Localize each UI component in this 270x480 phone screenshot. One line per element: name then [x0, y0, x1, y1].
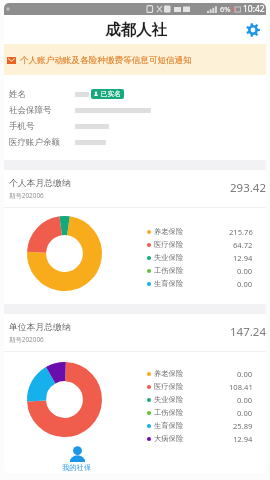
staticText: 0.00	[237, 369, 253, 379]
staticText: 10:42	[243, 3, 265, 15]
button[interactable]: 设置	[242, 19, 264, 41]
staticText: 64.72	[233, 240, 253, 250]
staticText: 工伤保险	[154, 266, 184, 275]
staticText: 医疗保险	[154, 240, 184, 249]
button[interactable]: 手机号	[4, 118, 266, 134]
staticText: 养老保险	[154, 227, 184, 236]
staticText: 6%	[220, 4, 231, 14]
staticText: 0.00	[237, 395, 253, 405]
staticText: 已实名	[101, 90, 121, 98]
button[interactable]: 医疗账户余额	[4, 134, 266, 150]
staticText: 单位本月总缴纳	[9, 322, 71, 333]
button[interactable]: 我的社保	[50, 445, 104, 472]
staticText: 个人本月总缴纳	[9, 178, 71, 189]
button[interactable]: 姓名	[4, 86, 266, 102]
staticText: 期号202006	[9, 335, 44, 344]
staticText: 生育保险	[154, 279, 184, 288]
staticText: 养老保险	[154, 369, 184, 378]
button[interactable]: 个人账户动账及各险种缴费等信息可短信通知	[4, 44, 266, 75]
staticText: 成都人社	[105, 20, 167, 40]
staticText: 医疗账户余额	[9, 137, 60, 148]
staticText: 我的社保	[62, 463, 92, 472]
staticText: 期号202006	[9, 191, 44, 200]
staticText: 108.41	[229, 382, 253, 392]
staticText: 0.00	[237, 266, 253, 276]
button[interactable]: 个人本月总缴纳	[4, 170, 266, 207]
staticText: 大病保险	[154, 434, 184, 443]
staticText: 医疗保险	[154, 382, 184, 391]
staticText: 25.89	[233, 421, 253, 431]
staticText: 失业保险	[154, 253, 184, 262]
staticText: 生育保险	[154, 421, 184, 430]
staticText: 215.76	[229, 227, 253, 237]
button[interactable]: 社会保障号	[4, 102, 266, 118]
staticText: 0.00	[237, 279, 253, 289]
staticText: 12.94	[233, 253, 253, 263]
staticText: 12.94	[233, 434, 253, 444]
staticText: 姓名	[9, 89, 26, 100]
button[interactable]: 单位本月总缴纳	[4, 314, 266, 351]
staticText: 293.42	[230, 180, 266, 196]
staticText: 0.00	[237, 408, 253, 418]
staticText: 手机号	[9, 121, 35, 132]
staticText: 社会保障号	[9, 105, 52, 116]
staticText: 失业保险	[154, 395, 184, 404]
staticText: 147.24	[230, 324, 266, 340]
staticText: 个人账户动账及各险种缴费等信息可短信通知	[20, 55, 192, 66]
staticText: 工伤保险	[154, 408, 184, 417]
